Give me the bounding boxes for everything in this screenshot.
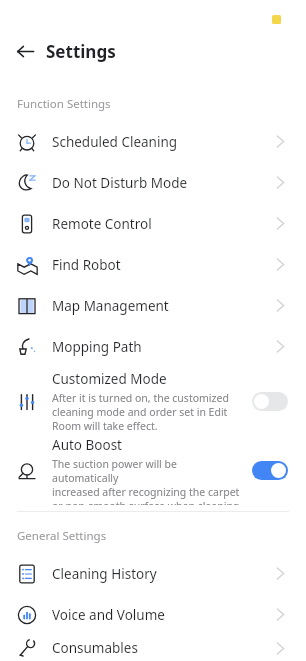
staticText: Mopping Path [52, 338, 142, 356]
button[interactable]: Back [8, 34, 42, 68]
button[interactable]: Voice and Volume [0, 594, 306, 635]
staticText: The suction power will be automatically … [52, 457, 246, 505]
staticText: Auto Boost [52, 436, 122, 454]
button[interactable]: Off [252, 392, 288, 411]
staticText: Function Settings [17, 96, 111, 112]
staticText: Find Robot [52, 256, 121, 274]
staticText: Cleaning History [52, 565, 157, 583]
button[interactable]: Find Robot [0, 244, 306, 285]
button[interactable]: Consumables [0, 635, 306, 661]
button[interactable]: Map Management [0, 285, 306, 326]
staticText: After it is turned on, the customized cl… [52, 391, 229, 433]
button[interactable]: On [252, 461, 288, 480]
button[interactable]: Cleaning History [0, 553, 306, 594]
staticText: Do Not Disturb Mode [52, 174, 188, 192]
button[interactable]: Customized Mode [0, 367, 306, 436]
button[interactable]: Remote Control [0, 203, 306, 244]
staticText: Customized Mode [52, 370, 167, 388]
button[interactable]: Scheduled Cleaning [0, 121, 306, 162]
staticText: General Settings [17, 528, 107, 544]
staticText: Voice and Volume [52, 606, 165, 624]
staticText: Remote Control [52, 215, 152, 233]
staticText: Settings [46, 40, 116, 63]
button[interactable]: Auto Boost [0, 436, 306, 505]
button[interactable]: Do Not Disturb Mode [0, 162, 306, 203]
button[interactable]: Mopping Path [0, 326, 306, 367]
staticText: Scheduled Cleaning [52, 133, 178, 151]
staticText: Consumables [52, 639, 138, 657]
staticText: Map Management [52, 297, 169, 315]
